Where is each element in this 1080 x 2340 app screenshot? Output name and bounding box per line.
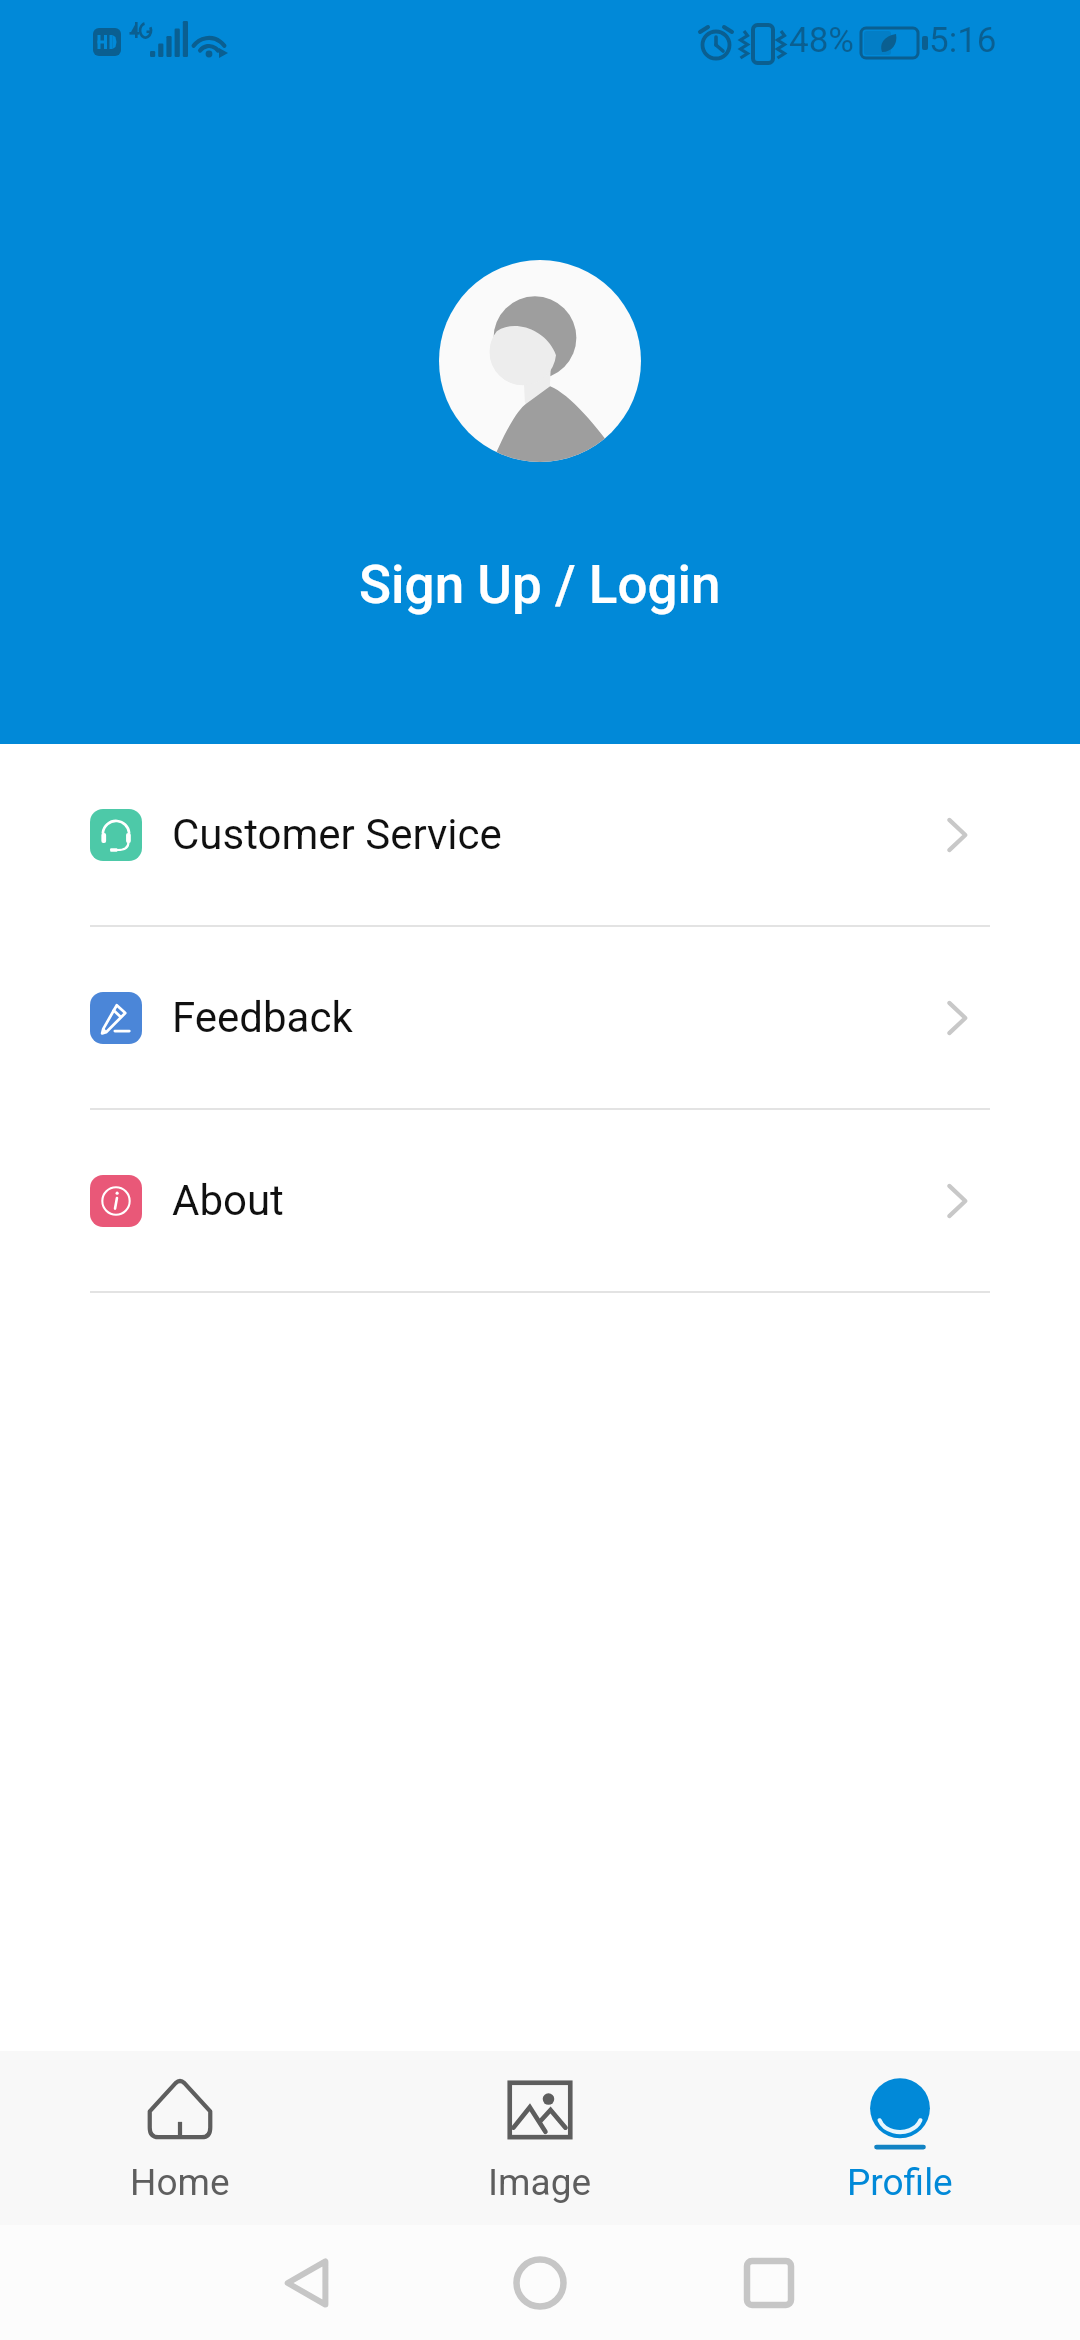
staticText: Home (130, 2161, 230, 2204)
button[interactable]: Sign Up / Login (319, 240, 761, 636)
staticText: Customer Service (172, 810, 502, 859)
staticText: 5:16 (929, 20, 997, 61)
staticText: About (172, 1176, 284, 1225)
staticText: Image (488, 2161, 592, 2204)
button[interactable]: Recent apps (724, 2238, 814, 2328)
button[interactable]: Home (495, 2238, 585, 2328)
staticText: Profile (847, 2161, 953, 2204)
button[interactable]: Profile (720, 2051, 1080, 2225)
button[interactable]: Home (0, 2051, 360, 2225)
button[interactable]: About (0, 1110, 1080, 1293)
staticText: 48% (789, 20, 854, 61)
button[interactable]: Customer Service (0, 744, 1080, 927)
staticText: Feedback (172, 993, 353, 1042)
staticText: Sign Up / Login (359, 554, 721, 616)
button[interactable]: Feedback (0, 927, 1080, 1110)
button[interactable]: Image (360, 2051, 720, 2225)
button[interactable]: Back (262, 2238, 352, 2328)
